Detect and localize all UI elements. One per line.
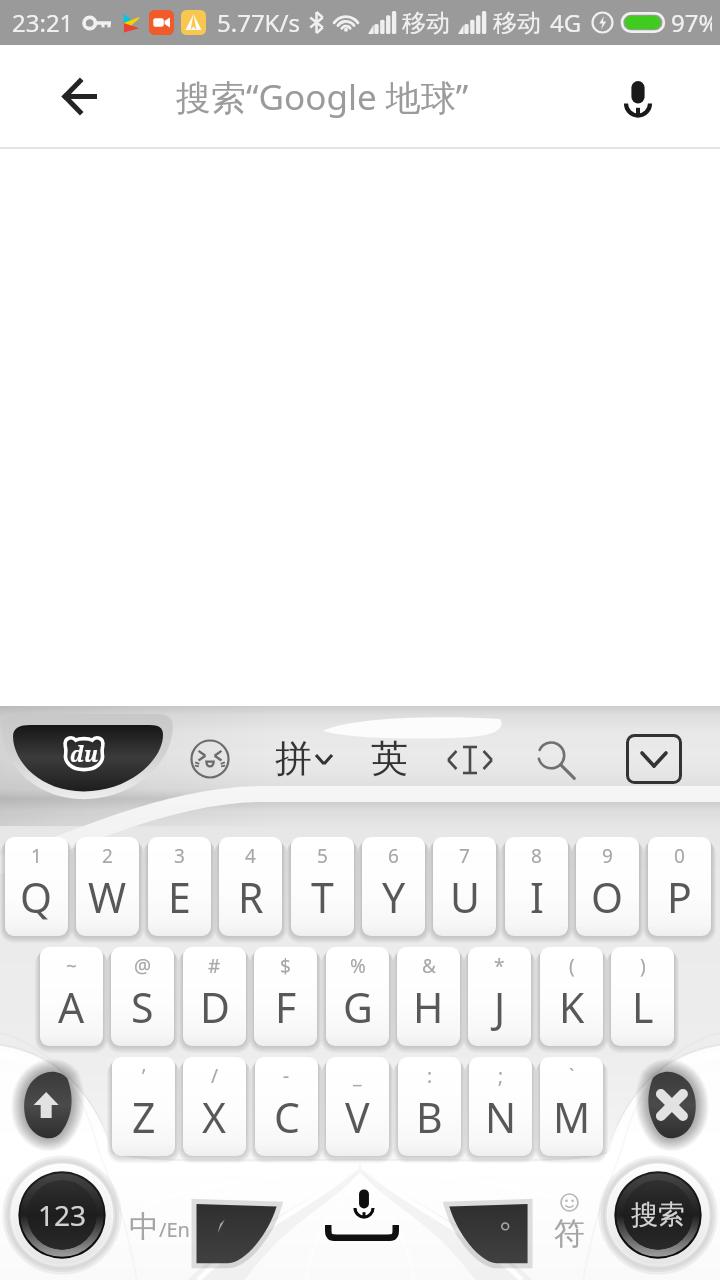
staticText: U — [450, 869, 480, 925]
staticText: B — [416, 1089, 443, 1145]
button[interactable]: Comma — [193, 1200, 281, 1266]
button[interactable]: Backspace — [622, 1058, 718, 1154]
staticText: 5 — [317, 843, 328, 869]
button[interactable]: ~ — [40, 947, 103, 1046]
staticText: 移动 — [402, 8, 450, 38]
button[interactable]: Shift — [2, 1058, 98, 1154]
staticText: H — [413, 979, 444, 1035]
button[interactable]: 2 — [76, 837, 139, 936]
staticText: P — [667, 869, 692, 925]
button[interactable]: 0 — [648, 837, 711, 936]
staticText: _ — [353, 1063, 362, 1089]
staticText: 9 — [602, 843, 613, 869]
staticText: : — [427, 1063, 433, 1089]
staticText: W — [88, 869, 127, 925]
staticText: K — [559, 979, 585, 1035]
staticText: du — [70, 740, 99, 769]
staticText: Q — [20, 869, 53, 925]
staticText: G — [343, 979, 373, 1035]
button[interactable]: Back — [44, 60, 116, 132]
staticText: 1 — [31, 843, 42, 869]
button[interactable]: 中 — [118, 1200, 200, 1254]
button[interactable]: ’ — [112, 1057, 175, 1156]
button[interactable]: Voice search — [608, 67, 668, 127]
button[interactable]: 1 — [5, 837, 68, 936]
staticText: / — [211, 1063, 219, 1089]
staticText: ) — [640, 953, 646, 979]
staticText: S — [131, 979, 154, 1035]
staticText: - — [283, 1063, 290, 1089]
button[interactable]: 符 — [534, 1186, 604, 1260]
staticText: ( — [569, 953, 575, 979]
button[interactable]: Move cursor — [438, 732, 502, 788]
button[interactable]: # — [183, 947, 246, 1046]
staticText: D — [200, 979, 230, 1035]
staticText: 3 — [174, 843, 185, 869]
staticText: $ — [280, 953, 291, 979]
staticText: 中 — [129, 1208, 159, 1246]
button[interactable]: 4 — [219, 837, 282, 936]
staticText: 拼 — [275, 735, 312, 782]
button[interactable]: 5 — [291, 837, 354, 936]
staticText: ; — [498, 1063, 504, 1089]
button[interactable]: $ — [254, 947, 317, 1046]
button[interactable]: _ — [326, 1057, 389, 1156]
button[interactable]: ` — [540, 1057, 603, 1156]
button[interactable]: & — [397, 947, 460, 1046]
staticText: O — [591, 869, 624, 925]
staticText: N — [485, 1089, 517, 1145]
staticText: 123 — [38, 1196, 87, 1234]
staticText: 2 — [102, 843, 113, 869]
staticText: Z — [132, 1089, 156, 1145]
button[interactable]: Numbers — [6, 1159, 118, 1271]
button[interactable]: Space — [324, 1186, 400, 1241]
button[interactable]: 英 — [362, 728, 416, 788]
button[interactable]: @ — [111, 947, 174, 1046]
staticText: 4G — [550, 6, 582, 39]
button[interactable]: : — [398, 1057, 461, 1156]
staticText: @ — [134, 953, 152, 979]
staticText: 0 — [674, 843, 685, 869]
button[interactable]: 6 — [362, 837, 425, 936]
staticText: 5.77K/s — [217, 6, 300, 39]
staticText: ’ — [142, 1063, 146, 1089]
button[interactable]: 3 — [148, 837, 211, 936]
button[interactable]: Hide keyboard — [626, 734, 682, 784]
staticText: # — [208, 953, 221, 979]
staticText: M — [553, 1089, 591, 1145]
staticText: 搜索 — [631, 1198, 685, 1232]
button[interactable]: / — [183, 1057, 246, 1156]
staticText: ` — [569, 1063, 575, 1089]
staticText: 4 — [245, 843, 256, 869]
staticText: 移动 — [493, 8, 541, 38]
staticText: R — [238, 869, 264, 925]
button[interactable]: Search — [524, 732, 586, 788]
button[interactable]: 9 — [576, 837, 639, 936]
staticText: J — [494, 979, 506, 1035]
button[interactable]: - — [255, 1057, 318, 1156]
button[interactable]: Period — [445, 1200, 531, 1266]
button[interactable]: 8 — [505, 837, 568, 936]
staticText: E — [168, 869, 191, 925]
staticText: Y — [382, 869, 406, 925]
button[interactable]: % — [326, 947, 389, 1046]
button[interactable]: ; — [469, 1057, 532, 1156]
staticText: L — [632, 979, 654, 1035]
staticText: * — [494, 953, 505, 979]
button[interactable]: 拼 — [275, 728, 333, 788]
staticText: V — [345, 1089, 370, 1145]
button[interactable]: ) — [611, 947, 674, 1046]
staticText: 23:21 — [12, 6, 74, 39]
button[interactable]: Emoji — [182, 731, 238, 787]
button[interactable]: ( — [540, 947, 603, 1046]
button[interactable]: Search — [602, 1159, 714, 1271]
staticText: C — [274, 1089, 300, 1145]
staticText: ~ — [66, 953, 77, 979]
button[interactable]: * — [468, 947, 531, 1046]
button[interactable]: Baidu IME menu — [0, 714, 178, 800]
staticText: 搜索“Google 地球” — [176, 73, 469, 121]
staticText: T — [311, 869, 334, 925]
button[interactable]: 7 — [433, 837, 496, 936]
staticText: 97% — [671, 6, 712, 39]
staticText: X — [202, 1089, 227, 1145]
